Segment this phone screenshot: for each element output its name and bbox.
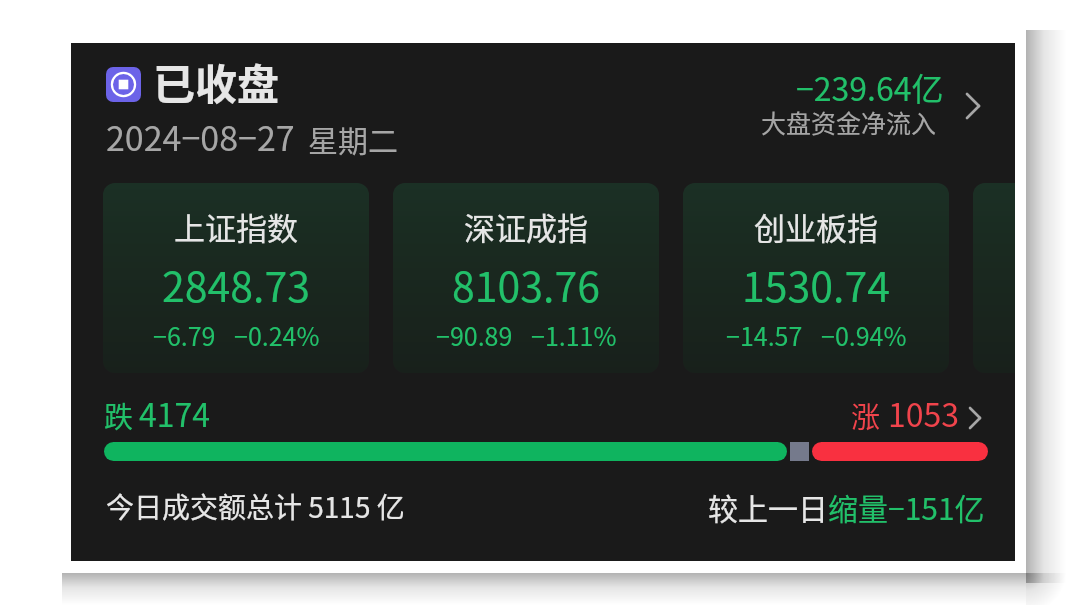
staticText: 跌 <box>104 394 134 436</box>
staticText: 1530.74 <box>742 254 890 313</box>
staticText: 涨 <box>851 394 881 436</box>
other: 查看大盘资金净流入详情 <box>958 91 988 121</box>
button[interactable]: −239.64亿 <box>683 55 943 155</box>
staticText: −0.94% <box>821 317 907 353</box>
staticText: −239.64亿 <box>796 64 944 110</box>
button[interactable]: 上证指数 <box>103 183 369 373</box>
staticText: 上证指数 <box>174 204 298 249</box>
staticText: 4174 <box>139 390 211 436</box>
staticText: 2024−08−27 <box>106 112 295 161</box>
button[interactable]: 深证成指 <box>393 183 659 373</box>
button[interactable]: 涨 <box>851 390 981 436</box>
staticText: −90.89 <box>436 317 513 353</box>
staticText: 星期二 <box>308 117 398 160</box>
staticText: 深证成指 <box>464 204 588 249</box>
staticText: 创业板指 <box>754 204 878 249</box>
staticText: 1053 <box>888 390 960 436</box>
staticText: −14.57 <box>726 317 803 353</box>
staticText: −6.79 <box>153 317 216 353</box>
button[interactable]: 创业板指 <box>683 183 949 373</box>
other: 查看涨跌家数详情 <box>962 405 988 431</box>
staticText: 2848.73 <box>162 254 310 313</box>
staticText: −1.11% <box>531 317 617 353</box>
staticText: 较上一日 <box>708 485 828 528</box>
staticText: 缩量−151亿 <box>828 485 985 528</box>
staticText: 大盘资金净流入 <box>761 104 937 140</box>
staticText: 今日成交额总计 5115 亿 <box>106 486 405 527</box>
staticText: 已收盘 <box>153 51 280 112</box>
staticText: 8103.76 <box>452 254 600 313</box>
staticText: −0.24% <box>234 317 320 353</box>
